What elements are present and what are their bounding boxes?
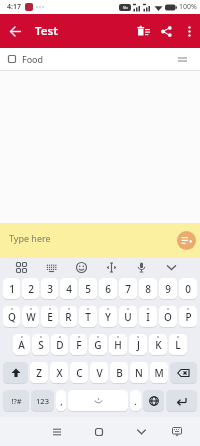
button[interactable]: G bbox=[89, 334, 107, 356]
button[interactable]: L bbox=[169, 334, 187, 356]
staticText: E bbox=[47, 310, 53, 324]
staticText: 7 bbox=[125, 282, 131, 296]
button[interactable]: S bbox=[32, 334, 49, 356]
button[interactable]: Q bbox=[3, 306, 20, 328]
staticText: B bbox=[116, 366, 123, 380]
staticText: 123 bbox=[36, 396, 49, 406]
staticText: U bbox=[124, 310, 132, 324]
staticText: V bbox=[96, 366, 103, 380]
staticText: G bbox=[94, 338, 102, 352]
staticText: 2 bbox=[28, 282, 34, 296]
button[interactable]: P bbox=[179, 306, 197, 328]
button[interactable] bbox=[170, 362, 197, 384]
button[interactable] bbox=[177, 231, 196, 250]
button[interactable] bbox=[12, 258, 42, 277]
button[interactable]: 3 bbox=[41, 278, 58, 300]
staticText: Food bbox=[22, 53, 44, 65]
button[interactable]: 1 bbox=[3, 278, 20, 300]
staticText: Type here bbox=[9, 232, 51, 244]
button[interactable]: I bbox=[139, 306, 157, 328]
button[interactable]: V bbox=[90, 362, 108, 384]
button[interactable]: 6 bbox=[99, 278, 117, 300]
staticText: 0 bbox=[185, 282, 191, 296]
staticText: 1 bbox=[9, 282, 15, 296]
button[interactable] bbox=[92, 425, 106, 439]
button[interactable]: , bbox=[56, 390, 66, 412]
button[interactable]: . bbox=[130, 390, 141, 412]
button[interactable] bbox=[50, 425, 64, 439]
button[interactable] bbox=[0, 14, 30, 48]
staticText: 4 bbox=[66, 282, 72, 296]
staticText: 8 bbox=[145, 282, 151, 296]
button[interactable]: 4 bbox=[60, 278, 77, 300]
button[interactable]: E bbox=[41, 306, 58, 328]
button[interactable]: N bbox=[130, 362, 148, 384]
button[interactable] bbox=[132, 14, 155, 48]
button[interactable] bbox=[169, 424, 185, 440]
staticText: L bbox=[175, 338, 181, 352]
button[interactable]: Food bbox=[0, 48, 200, 70]
staticText: O bbox=[164, 310, 172, 324]
button[interactable] bbox=[134, 425, 148, 439]
staticText: !?# bbox=[11, 396, 22, 406]
button[interactable] bbox=[72, 258, 102, 277]
staticText: D bbox=[56, 338, 64, 352]
button[interactable]: Z bbox=[30, 362, 48, 384]
staticText: Y bbox=[105, 310, 111, 324]
button[interactable]: 0 bbox=[179, 278, 197, 300]
button[interactable]: W bbox=[22, 306, 39, 328]
button[interactable]: B bbox=[110, 362, 128, 384]
button[interactable]: A bbox=[13, 334, 30, 356]
staticText: R bbox=[65, 310, 72, 324]
button[interactable] bbox=[102, 258, 132, 277]
button[interactable]: M bbox=[150, 362, 168, 384]
button[interactable] bbox=[155, 14, 178, 48]
button[interactable] bbox=[143, 390, 164, 412]
button[interactable] bbox=[42, 258, 72, 277]
button[interactable] bbox=[3, 362, 28, 384]
staticText: Vo bbox=[123, 5, 128, 10]
button[interactable]: Type here bbox=[0, 223, 200, 258]
button[interactable]: K bbox=[149, 334, 167, 356]
staticText: 100% bbox=[179, 2, 197, 12]
button[interactable]: O bbox=[159, 306, 177, 328]
staticText: W bbox=[26, 310, 36, 324]
button[interactable]: T bbox=[79, 306, 97, 328]
button[interactable]: 9 bbox=[159, 278, 177, 300]
staticText: , bbox=[60, 395, 63, 407]
button[interactable] bbox=[162, 258, 192, 277]
staticText: M bbox=[154, 366, 164, 380]
button[interactable]: !?# bbox=[3, 390, 29, 412]
button[interactable]: R bbox=[60, 306, 77, 328]
button[interactable]: Y bbox=[99, 306, 117, 328]
staticText: F bbox=[76, 338, 82, 352]
staticText: Test bbox=[35, 23, 58, 39]
button[interactable] bbox=[68, 390, 128, 412]
button[interactable]: 8 bbox=[139, 278, 157, 300]
staticText: J bbox=[137, 338, 140, 352]
button[interactable]: X bbox=[50, 362, 68, 384]
staticText: C bbox=[76, 366, 83, 380]
button[interactable]: 7 bbox=[119, 278, 137, 300]
button[interactable]: 5 bbox=[79, 278, 97, 300]
staticText: I bbox=[146, 310, 150, 324]
staticText: S bbox=[38, 338, 44, 352]
staticText: 6 bbox=[105, 282, 111, 296]
button[interactable]: F bbox=[70, 334, 87, 356]
button[interactable]: 123 bbox=[31, 390, 54, 412]
staticText: . bbox=[134, 395, 137, 407]
staticText: 9 bbox=[165, 282, 171, 296]
staticText: P bbox=[185, 310, 192, 324]
button[interactable]: H bbox=[109, 334, 127, 356]
button[interactable]: J bbox=[129, 334, 147, 356]
staticText: H bbox=[114, 338, 122, 352]
button[interactable]: 2 bbox=[22, 278, 39, 300]
button[interactable]: C bbox=[70, 362, 88, 384]
button[interactable] bbox=[166, 390, 197, 412]
button[interactable]: D bbox=[51, 334, 68, 356]
button[interactable] bbox=[178, 14, 200, 48]
button[interactable] bbox=[132, 258, 162, 277]
staticText: Q bbox=[8, 310, 16, 324]
button[interactable]: U bbox=[119, 306, 137, 328]
staticText: N bbox=[135, 366, 143, 380]
